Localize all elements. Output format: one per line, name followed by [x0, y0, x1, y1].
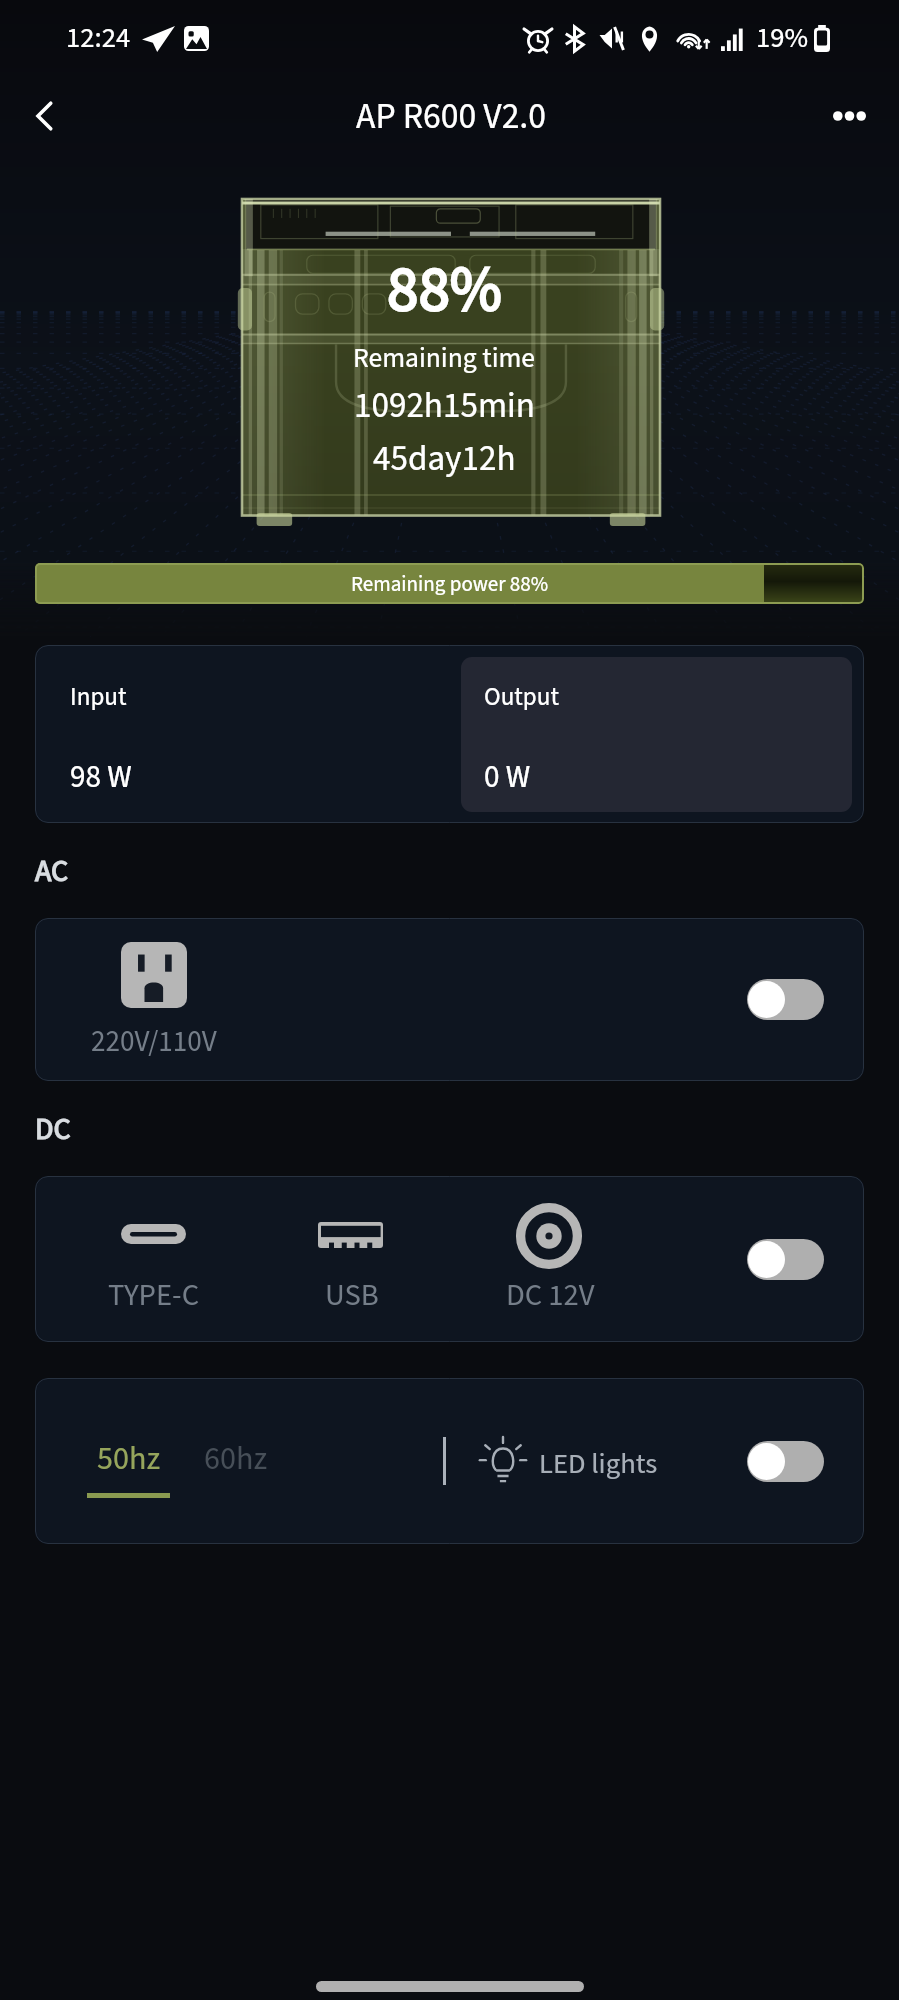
staticText: AP R600 V2.0 [356, 92, 547, 143]
button[interactable]: Toggle [747, 1239, 824, 1280]
staticText: 45day12h [373, 434, 516, 484]
staticText: 1092h15min [354, 381, 535, 431]
staticText: 19% [756, 18, 809, 59]
staticText: 88% [387, 245, 502, 335]
staticText: DC [35, 1108, 71, 1151]
staticText: USB [325, 1274, 379, 1317]
button[interactable]: More options [822, 89, 876, 143]
staticText: 0 W [484, 755, 531, 799]
staticText: 60hz [204, 1436, 268, 1472]
staticText: 50hz [97, 1436, 161, 1482]
staticText: 220V/110V [91, 1021, 217, 1062]
button[interactable]: Input [35, 645, 461, 823]
button[interactable]: TYPE-C [121, 1224, 187, 1292]
staticText: 12:24 [66, 18, 131, 59]
staticText: DC 12V [506, 1274, 595, 1317]
staticText: Remaining time [353, 339, 536, 378]
staticText: AC [35, 850, 69, 893]
button[interactable]: Toggle [747, 979, 824, 1020]
staticText: LED lights [539, 1444, 658, 1485]
button[interactable]: Toggle [747, 1441, 824, 1482]
button[interactable]: 60hz [201, 1436, 271, 1472]
button[interactable]: 50hz [87, 1436, 170, 1498]
staticText: Remaining power 88% [351, 569, 549, 599]
button[interactable]: DC 12V [516, 1203, 582, 1271]
staticText: TYPE-C [108, 1274, 200, 1317]
staticText: Output [484, 679, 559, 715]
button[interactable]: Output [461, 657, 852, 812]
staticText: 98 W [70, 755, 132, 799]
button[interactable]: 220V/110V [91, 942, 286, 1008]
button[interactable]: USB [318, 1222, 384, 1290]
staticText: Input [70, 679, 127, 715]
button[interactable]: Back [18, 89, 72, 143]
button[interactable]: LED lights [475, 1432, 661, 1490]
